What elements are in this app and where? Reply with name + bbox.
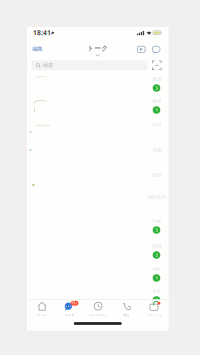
staticText: トーク [87,44,108,52]
button[interactable]: QRコードリーダー [152,60,162,70]
staticText: 11:46 [152,218,161,224]
staticText: ホーム [38,313,47,317]
staticText: 12:57 [152,172,161,178]
staticText: 検索 [43,62,53,69]
staticText: 1 [155,275,157,281]
staticText: 通話 [123,313,129,317]
button[interactable]: ホーム [29,299,56,318]
staticText: タイムライン [89,313,107,317]
staticText: 9 [155,297,157,303]
staticText: ウォレット [147,313,162,317]
button[interactable]: タイムライン [85,299,112,318]
button[interactable]: 編集 [29,44,45,54]
staticText: 3 [155,85,157,91]
button[interactable]: 新規トーク [151,44,162,55]
staticText: 18:02 [152,98,161,104]
staticText: 9:41 [153,266,160,272]
button[interactable]: ビデオ [136,44,147,55]
button[interactable]: 検索 [31,60,147,70]
button[interactable]: 通話 [113,299,140,318]
staticText: 18:41 [33,28,51,37]
button[interactable]: 18:30 [27,74,168,96]
staticText: 2 [155,252,157,258]
staticText: 18:30 [152,76,161,82]
staticText: 編集 [32,45,42,52]
staticText: 15:20 [152,147,161,153]
button[interactable]: 10:03 [27,241,168,264]
staticText: トーク [66,313,75,317]
staticText: 5 [155,227,157,233]
button[interactable]: ウォレット [141,299,168,318]
button[interactable]: 12:57 [27,170,168,192]
staticText: 17:12 [152,122,161,128]
staticText: 1 [155,107,157,113]
button[interactable]: 11:46 [27,216,168,241]
staticText: 10:03 [152,243,161,249]
staticText: 99+ [71,301,77,305]
button[interactable]: 18:02 [27,96,168,120]
button[interactable]: 8:15 [27,286,168,299]
button[interactable]: 99+ [57,299,84,318]
staticText: 2021.05.12 [147,194,165,200]
button[interactable]: 9:41 [27,264,168,286]
staticText: 8:15 [153,288,160,294]
